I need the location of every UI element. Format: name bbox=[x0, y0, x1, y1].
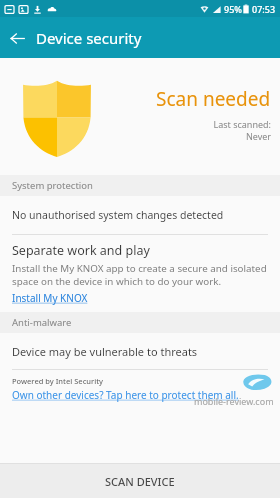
staticText: Install the My KNOX app to create a secu… bbox=[12, 262, 268, 288]
button[interactable]: Device may be vulnerable to threats bbox=[0, 333, 280, 369]
button[interactable]: No unauthorised system changes detected bbox=[0, 196, 280, 234]
staticText: mobile-review.com bbox=[194, 395, 274, 407]
button[interactable]: Powered by Intel Security bbox=[0, 370, 280, 402]
staticText: SCAN DEVICE bbox=[105, 474, 175, 489]
staticText: Scan needed bbox=[156, 86, 271, 112]
staticText: Separate work and play bbox=[12, 242, 150, 259]
staticText: Device security bbox=[36, 28, 142, 48]
staticText: 95% bbox=[224, 3, 242, 15]
staticText: Anti-malware bbox=[12, 316, 72, 329]
staticText: Powered by Intel Security bbox=[12, 376, 104, 386]
staticText: System protection bbox=[12, 179, 93, 192]
staticText: Never bbox=[245, 130, 271, 142]
staticText: 07:53 bbox=[252, 3, 276, 15]
staticText: No unauthorised system changes detected bbox=[12, 208, 224, 222]
button[interactable]: Separate work and play bbox=[0, 235, 280, 312]
button[interactable]: Back bbox=[0, 21, 34, 55]
staticText: Device may be vulnerable to threats bbox=[12, 344, 198, 359]
staticText: Own other devices? Tap here to protect t… bbox=[12, 388, 239, 402]
button[interactable]: Install My KNOX bbox=[12, 291, 88, 305]
button[interactable]: SCAN DEVICE bbox=[0, 464, 280, 498]
staticText: Last scanned: bbox=[213, 118, 271, 130]
